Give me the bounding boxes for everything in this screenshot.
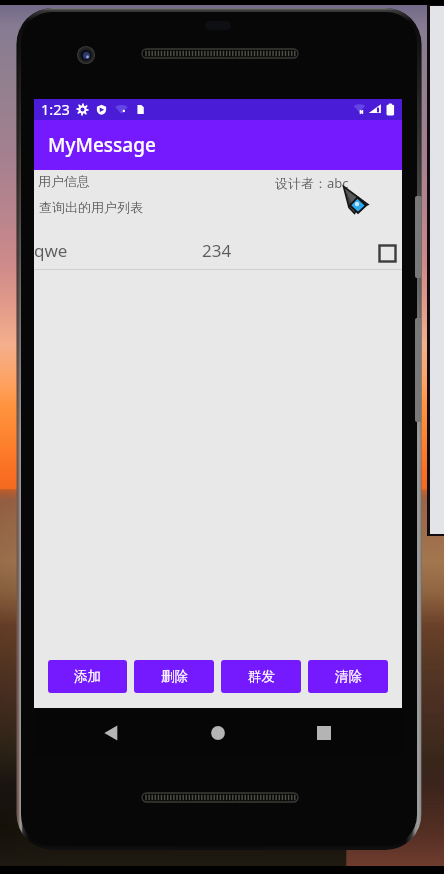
button[interactable]: Back <box>90 719 118 747</box>
button[interactable]: qwe <box>34 224 402 269</box>
staticText: 清除 <box>335 668 362 685</box>
staticText: 234 <box>202 239 232 262</box>
button[interactable]: Home <box>204 719 232 747</box>
staticText: 群发 <box>248 668 275 685</box>
button[interactable]: 清除 <box>308 660 388 693</box>
button[interactable]: Recent apps <box>310 719 338 747</box>
staticText: 1:23 <box>41 99 70 119</box>
button[interactable]: Select qwe <box>379 245 396 262</box>
staticText: 删除 <box>161 668 188 685</box>
button[interactable]: 群发 <box>221 660 301 693</box>
staticText: 设计者：abc <box>275 174 349 192</box>
staticText: MyMessage <box>48 132 156 158</box>
button[interactable]: 删除 <box>134 660 214 693</box>
staticText: 用户信息 <box>38 173 90 189</box>
staticText: 添加 <box>74 668 101 685</box>
button[interactable]: 添加 <box>48 660 127 693</box>
staticText: qwe <box>34 239 68 262</box>
staticText: 查询出的用户列表 <box>39 199 143 215</box>
